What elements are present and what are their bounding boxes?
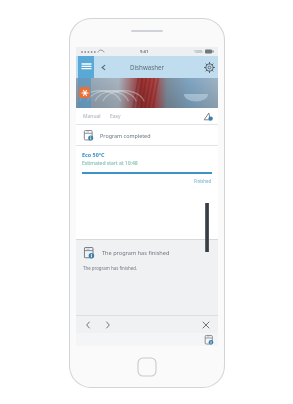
staticText: Dishwasher [130,63,165,71]
button[interactable]: Easy [109,113,122,120]
button[interactable]: Appliance [79,87,90,98]
button[interactable]: Menu [78,56,94,78]
button[interactable]: Program completed [76,125,218,145]
button[interactable]: Manual [82,113,102,120]
staticText: Eco 50°C [82,151,105,158]
button[interactable]: Next [102,319,114,331]
button[interactable]: Back [96,56,110,78]
button[interactable]: Settings [200,56,218,78]
staticText: Finished [194,178,212,184]
button[interactable]: Previous [82,319,94,331]
staticText: Manual [83,113,101,120]
staticText: Estimated start at 10:48 [82,160,138,167]
button[interactable]: Appliances [203,334,214,345]
button[interactable]: Program info [202,111,213,122]
button[interactable]: Close [200,319,212,331]
staticText: Program completed [100,132,151,139]
staticText: Easy [110,113,121,120]
staticText: The program has finished. [83,265,138,271]
staticText: The program has finished [102,249,170,257]
staticText: 9:41 [140,49,149,55]
staticText: 100% [194,49,203,54]
